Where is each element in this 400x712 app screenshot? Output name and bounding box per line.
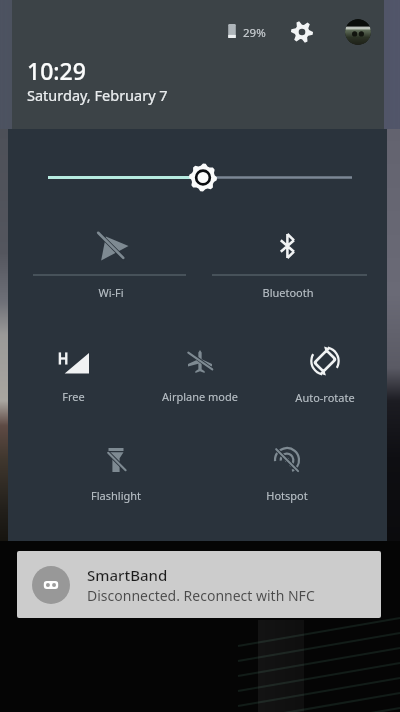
staticText: SmartBand bbox=[87, 565, 168, 585]
button[interactable]: Auto-rotate bbox=[283, 338, 367, 384]
button[interactable]: Bluetooth bbox=[246, 223, 330, 269]
staticText: Bluetooth bbox=[262, 285, 314, 300]
button[interactable]: SmartBand bbox=[17, 551, 381, 618]
button[interactable]: Hotspot bbox=[245, 437, 329, 483]
staticText: Hotspot bbox=[266, 488, 308, 503]
button[interactable]: User profile bbox=[345, 19, 371, 45]
staticText: Flashlight bbox=[91, 488, 141, 503]
staticText: Wi-Fi bbox=[98, 285, 124, 300]
button[interactable]: Wi-Fi bbox=[69, 222, 153, 269]
staticText: Auto-rotate bbox=[295, 390, 355, 405]
staticText: 29% bbox=[243, 25, 266, 41]
staticText: Airplane mode bbox=[162, 389, 238, 404]
staticText: Disconnected. Reconnect with NFC bbox=[87, 586, 315, 605]
button[interactable]: Settings bbox=[290, 20, 314, 44]
button[interactable]: Airplane mode bbox=[158, 338, 242, 384]
button[interactable]: Flashlight bbox=[74, 437, 158, 483]
button[interactable]: Free bbox=[31, 338, 115, 386]
staticText: 10:29 bbox=[27, 55, 86, 86]
staticText: Free bbox=[62, 389, 85, 404]
staticText: Saturday, February 7 bbox=[27, 85, 168, 105]
